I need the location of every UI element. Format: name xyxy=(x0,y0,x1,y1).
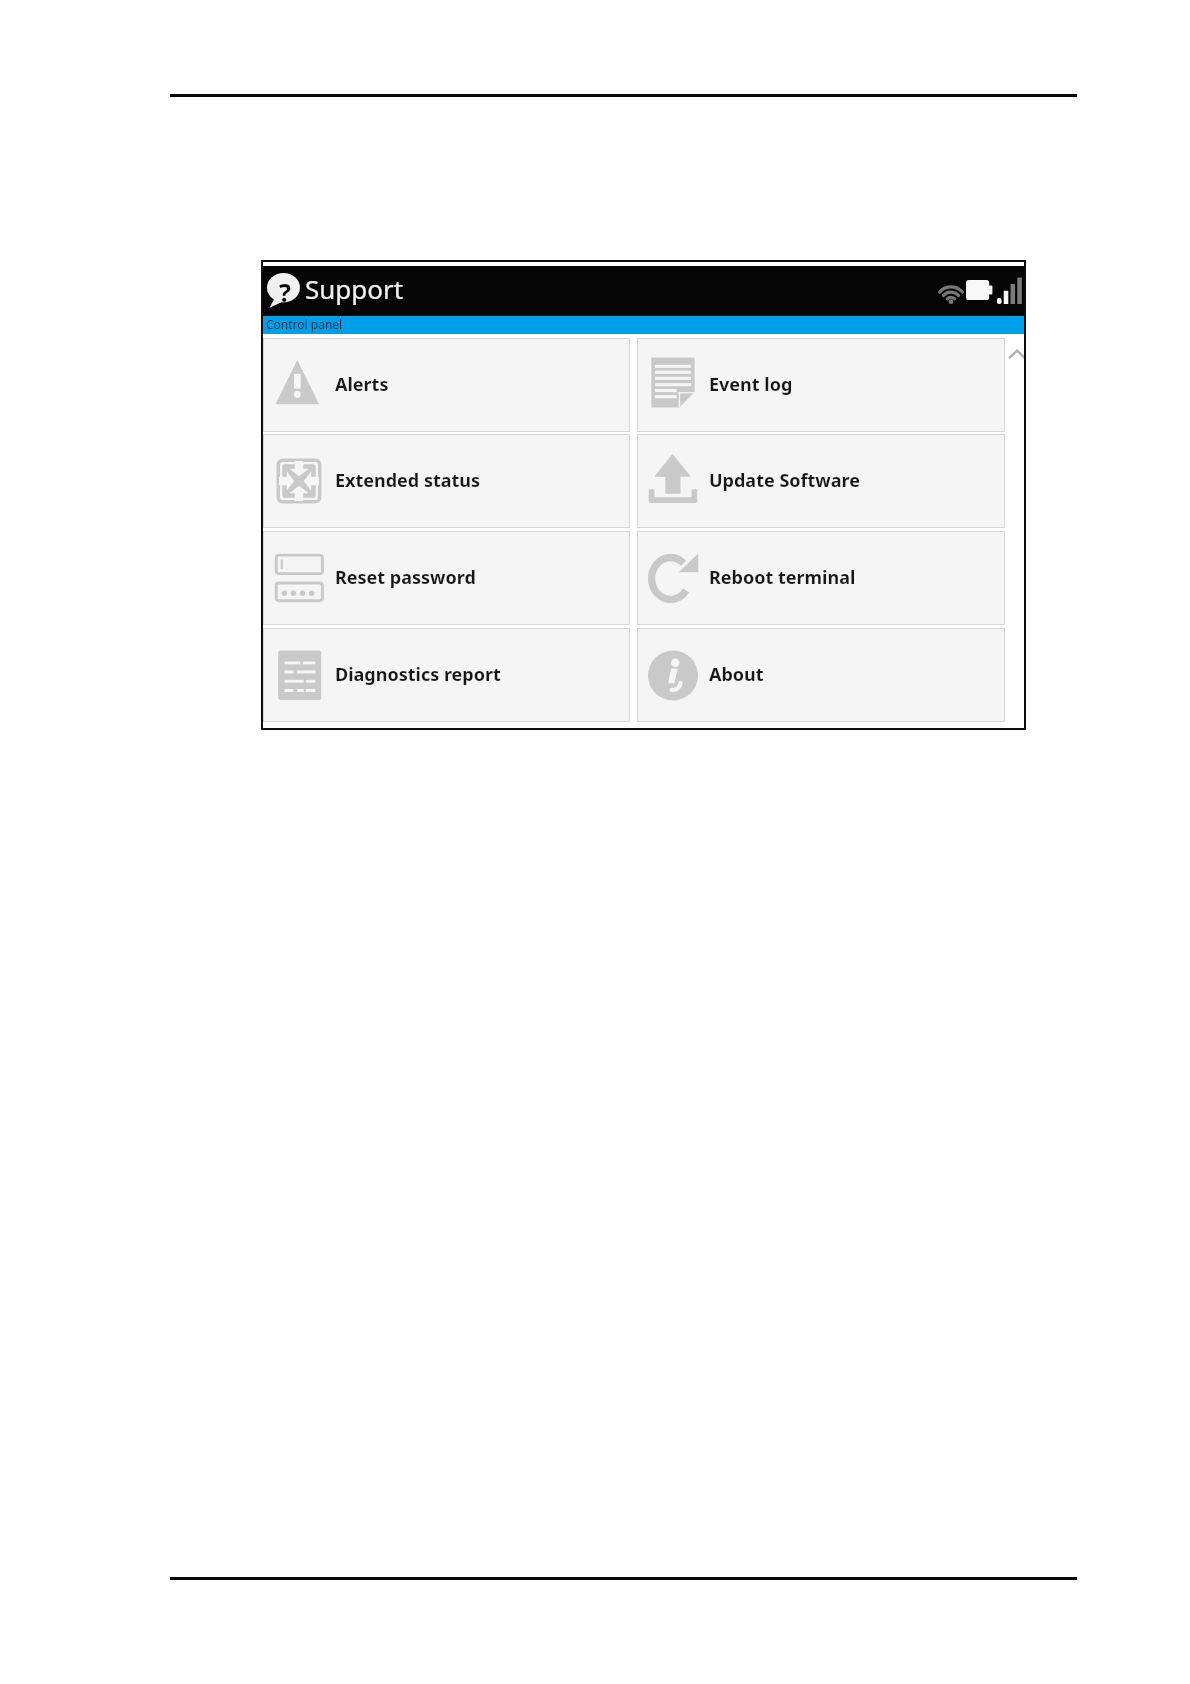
button[interactable]: Reboot terminal xyxy=(637,531,1005,625)
staticText: Extended status xyxy=(335,468,481,493)
staticText: Reboot terminal xyxy=(709,565,856,590)
button[interactable]: About xyxy=(637,628,1005,722)
staticText: Reset password xyxy=(335,565,476,590)
staticText: Event log xyxy=(709,372,793,397)
staticText: Support xyxy=(305,271,404,306)
button[interactable]: Reset password xyxy=(263,531,630,625)
button[interactable]: Extended status xyxy=(263,434,630,528)
button[interactable]: Event log xyxy=(637,338,1005,432)
button[interactable]: Help xyxy=(266,273,301,308)
staticText: Diagnostics report xyxy=(335,662,501,687)
button[interactable]: Alerts xyxy=(263,338,630,432)
button[interactable]: Update Software xyxy=(637,434,1005,528)
staticText: ? xyxy=(279,275,291,309)
staticText: About xyxy=(709,662,764,687)
staticText: Control panel xyxy=(266,316,343,332)
staticText: Alerts xyxy=(335,372,389,397)
button[interactable]: Diagnostics report xyxy=(263,628,630,722)
staticText: Update Software xyxy=(709,468,860,493)
